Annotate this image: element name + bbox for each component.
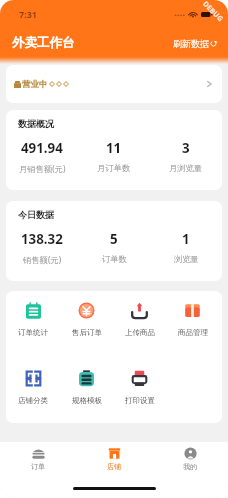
- staticText: 上传商品: [125, 328, 155, 337]
- staticText: 我的: [183, 462, 197, 471]
- staticText: 店铺分类: [18, 396, 48, 405]
- button[interactable]: 我的: [152, 442, 228, 476]
- staticText: 月订单数: [97, 163, 131, 173]
- staticText: 刷新数据: [173, 38, 209, 49]
- button[interactable]: 店铺分类: [6, 370, 60, 405]
- button[interactable]: 打印设置: [113, 370, 166, 405]
- button[interactable]: 营业中: [6, 65, 222, 103]
- staticText: 打印设置: [125, 396, 155, 405]
- button[interactable]: 订单: [0, 442, 76, 476]
- staticText: 3: [182, 139, 190, 157]
- staticText: 月销售额(元): [19, 163, 66, 174]
- button[interactable]: 售后订单: [60, 302, 113, 337]
- staticText: 外卖工作台: [12, 35, 75, 51]
- staticText: 订单数: [102, 254, 127, 264]
- button[interactable]: 订单统计: [6, 302, 60, 337]
- staticText: 月浏览量: [169, 163, 203, 173]
- staticText: 数据概况: [18, 118, 54, 129]
- staticText: 商品管理: [178, 328, 208, 337]
- other: Details: [206, 79, 213, 89]
- staticText: 销售额(元): [23, 254, 62, 265]
- staticText: 浏览量: [174, 254, 199, 264]
- button[interactable]: 刷新数据: [173, 38, 217, 49]
- staticText: 7:31: [19, 8, 37, 20]
- button[interactable]: 规格模板: [60, 370, 113, 405]
- staticText: 店铺: [107, 462, 121, 471]
- staticText: 5: [110, 230, 118, 248]
- staticText: 售后订单: [72, 328, 102, 337]
- staticText: 11: [106, 139, 122, 157]
- staticText: 规格模板: [72, 396, 102, 405]
- staticText: 订单统计: [18, 328, 48, 337]
- staticText: 138.32: [21, 230, 63, 248]
- staticText: 订单: [31, 462, 45, 471]
- staticText: 营业中: [22, 79, 48, 90]
- staticText: 1: [182, 230, 190, 248]
- staticText: 今日数据: [18, 209, 54, 220]
- staticText: 491.94: [21, 139, 63, 157]
- button[interactable]: 商品管理: [166, 302, 219, 337]
- button[interactable]: 上传商品: [113, 302, 166, 337]
- button[interactable]: 店铺: [76, 442, 152, 476]
- staticText: DEBUG: [200, 0, 226, 25]
